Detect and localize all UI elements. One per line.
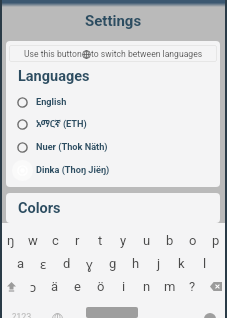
staticText: b xyxy=(166,233,174,248)
button[interactable]: n xyxy=(135,275,158,298)
button[interactable]: h xyxy=(124,252,147,275)
staticText: j xyxy=(157,256,161,271)
staticText: t xyxy=(98,233,103,248)
staticText: n xyxy=(143,279,151,294)
staticText: e xyxy=(74,279,81,294)
button[interactable]: c xyxy=(44,229,66,252)
button[interactable]: j xyxy=(147,252,170,275)
button[interactable]: y xyxy=(112,229,135,252)
staticText: Dinka (Thoŋ Jiëŋ) xyxy=(36,164,110,175)
staticText: c xyxy=(52,233,59,248)
button[interactable]: m xyxy=(158,275,181,298)
button[interactable]: English xyxy=(6,90,220,113)
staticText: ö xyxy=(97,279,105,294)
staticText: ? xyxy=(189,279,196,294)
button[interactable]: p xyxy=(204,229,227,252)
button[interactable]: ŋ xyxy=(0,229,22,252)
button[interactable]: i xyxy=(112,275,135,298)
button[interactable]: ä xyxy=(44,275,66,298)
button[interactable]: r xyxy=(66,229,89,252)
button[interactable]: g xyxy=(101,252,124,275)
button[interactable]: Backspace xyxy=(204,275,227,298)
button[interactable]: w xyxy=(22,229,44,252)
button[interactable]: k xyxy=(170,252,193,275)
staticText: ɔ xyxy=(30,278,37,296)
staticText: ŋ xyxy=(7,233,15,248)
button[interactable]: b xyxy=(158,229,181,252)
staticText: Nuer (Thok Näth) xyxy=(36,141,108,152)
staticText: አማርኛ (ETH) xyxy=(36,117,87,130)
button[interactable]: e xyxy=(66,275,89,298)
staticText: Colors xyxy=(18,200,61,217)
staticText: m xyxy=(164,279,176,294)
staticText: d xyxy=(63,256,71,271)
staticText: u xyxy=(143,233,151,248)
staticText: Languages xyxy=(18,68,90,85)
button[interactable]: a xyxy=(10,252,32,275)
button[interactable]: o xyxy=(181,229,204,252)
staticText: w xyxy=(28,233,38,248)
staticText: g xyxy=(109,256,117,271)
staticText: y xyxy=(120,233,127,248)
staticText: ɣ xyxy=(86,255,93,273)
button[interactable]: ?123 xyxy=(0,302,44,318)
staticText: i xyxy=(122,279,126,294)
button[interactable]: አማርኛ (ETH) xyxy=(6,112,220,135)
button[interactable]: ɣ xyxy=(78,252,101,275)
staticText: h xyxy=(132,256,140,271)
staticText: a xyxy=(17,256,25,271)
button[interactable]: d xyxy=(55,252,78,275)
staticText: Use this button xyxy=(24,49,82,59)
staticText: ɛ xyxy=(40,255,47,273)
staticText: r xyxy=(75,233,80,248)
button[interactable]: l xyxy=(193,252,216,275)
button[interactable]: t xyxy=(89,229,112,252)
button[interactable]: Enter xyxy=(192,302,227,318)
button[interactable]: Dinka (Thoŋ Jiëŋ) xyxy=(6,158,220,181)
staticText: to switch between languages xyxy=(91,49,203,59)
staticText: English xyxy=(36,96,67,107)
staticText: ?123 xyxy=(12,312,32,318)
button[interactable]: u xyxy=(135,229,158,252)
button[interactable]: ɛ xyxy=(32,252,55,275)
button[interactable] xyxy=(71,302,152,318)
button[interactable]: Change language xyxy=(44,302,71,318)
button[interactable]: ɔ xyxy=(22,275,44,298)
staticText: o xyxy=(189,233,197,248)
staticText: k xyxy=(178,256,185,271)
button[interactable]: ö xyxy=(89,275,112,298)
button[interactable]: ? xyxy=(181,275,204,298)
staticText: l xyxy=(203,256,207,271)
button[interactable]: Shift xyxy=(0,275,22,298)
staticText: p xyxy=(212,233,220,248)
staticText: Settings xyxy=(85,12,142,30)
staticText: ä xyxy=(51,279,59,294)
button[interactable]: Nuer (Thok Näth) xyxy=(6,135,220,158)
